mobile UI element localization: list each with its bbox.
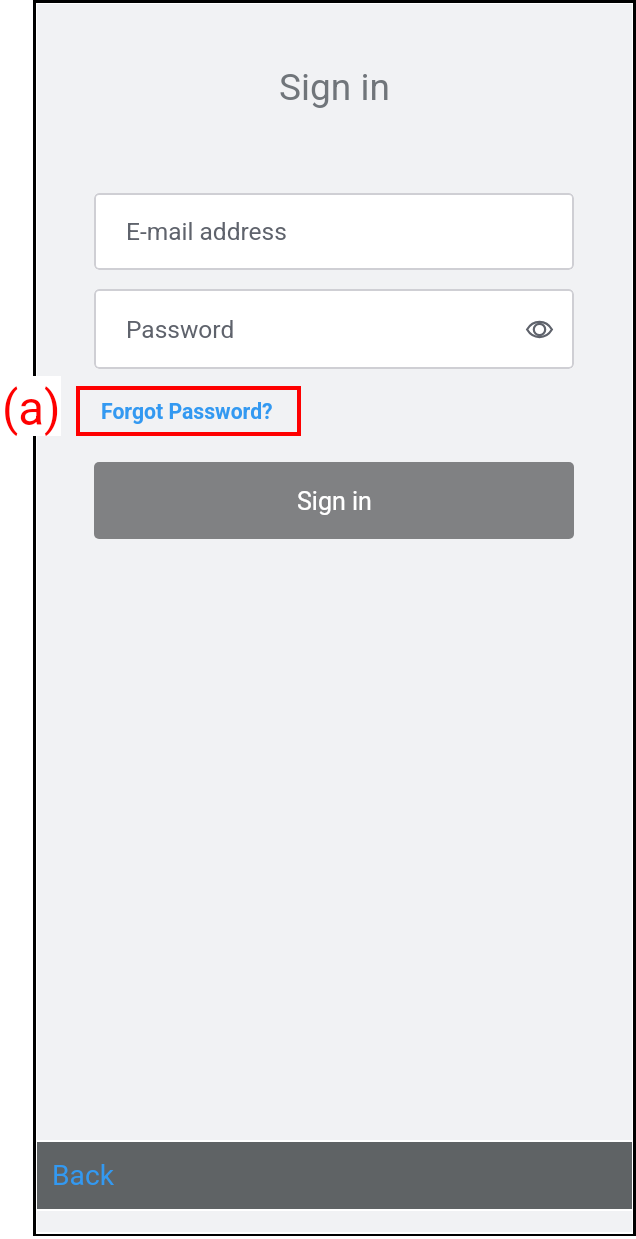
button[interactable]: Show password (519, 309, 560, 350)
staticText: Sign in (297, 487, 372, 516)
button[interactable]: Forgot Password? (76, 386, 301, 436)
staticText: Back (52, 1159, 114, 1192)
staticText: Sign in (37, 66, 632, 109)
button[interactable]: Back (47, 1155, 119, 1196)
button[interactable]: E-mail address (94, 193, 574, 270)
staticText: (a) (2, 381, 61, 437)
button[interactable]: Sign in (94, 462, 574, 539)
staticText: Forgot Password? (101, 399, 273, 424)
button[interactable]: Password (94, 289, 574, 369)
staticText: Password (126, 315, 235, 344)
staticText: E-mail address (126, 217, 287, 246)
